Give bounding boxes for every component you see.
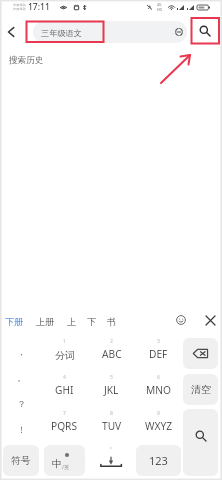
staticText: 2 <box>110 338 113 345</box>
staticText: 7 <box>63 410 66 417</box>
staticText: GHI <box>55 383 74 397</box>
staticText: 5 <box>110 374 113 381</box>
staticText: 中国移动 <box>13 3 26 7</box>
staticText: ， <box>17 346 26 357</box>
button[interactable]: 6 <box>135 374 182 405</box>
staticText: JKL <box>104 383 119 397</box>
staticText: 上 <box>67 316 77 328</box>
button[interactable]: 1 <box>41 338 88 369</box>
staticText: 符号 <box>11 455 31 467</box>
button[interactable]: 7 <box>41 410 88 441</box>
staticText: WXYZ <box>145 419 173 433</box>
button[interactable]: 中 <box>44 445 85 476</box>
button[interactable]: 8 <box>88 410 135 441</box>
button[interactable]: Search <box>183 409 218 476</box>
staticText: 。 <box>17 372 26 383</box>
staticText: ！ <box>17 424 26 435</box>
button[interactable]: 上册 <box>36 316 55 328</box>
button[interactable]: 。 <box>3 364 39 390</box>
staticText: TUV <box>102 419 122 433</box>
button[interactable]: 2 <box>88 338 135 369</box>
staticText: 3 <box>157 338 160 345</box>
staticText: 分词 <box>55 349 75 362</box>
staticText: 1 <box>63 338 66 345</box>
button[interactable]: 三年级语文 <box>33 21 187 43</box>
button[interactable]: Back <box>0 20 22 43</box>
staticText: DEF <box>149 347 168 361</box>
button[interactable]: ？ <box>3 390 39 416</box>
staticText: 中 <box>52 457 62 470</box>
button[interactable]: ！ <box>3 416 39 442</box>
button[interactable]: 下册 <box>5 316 24 328</box>
button[interactable]: 5 <box>88 374 135 405</box>
button[interactable]: 3 <box>135 338 182 369</box>
button[interactable]: Backspace <box>183 338 218 369</box>
staticText: 17:11 <box>28 1 50 13</box>
button[interactable]: 123 <box>136 445 181 476</box>
staticText: 书 <box>107 316 117 328</box>
staticText: 4 <box>63 374 66 381</box>
button[interactable]: Search <box>191 18 219 44</box>
button[interactable]: Emoji <box>172 311 190 329</box>
button[interactable]: 9 <box>135 410 182 441</box>
button[interactable]: Space <box>88 445 134 476</box>
staticText: 上册 <box>36 316 55 328</box>
button[interactable]: 4 <box>41 374 88 405</box>
staticText: PQRS <box>51 419 78 433</box>
button[interactable]: 书 <box>107 316 117 328</box>
staticText: /英 <box>62 463 70 470</box>
staticText: MNO <box>146 383 171 397</box>
button[interactable]: 符号 <box>3 445 39 476</box>
staticText: 清空 <box>191 383 211 396</box>
button[interactable]: Close keyboard <box>201 311 219 329</box>
staticText: 8 <box>110 410 113 417</box>
staticText: 123 <box>149 453 168 468</box>
staticText: ？ <box>17 398 26 409</box>
button[interactable]: 上 <box>67 316 77 328</box>
button[interactable]: 清空 <box>183 374 218 405</box>
button[interactable]: 下 <box>87 316 97 328</box>
button[interactable]: ， <box>3 338 39 364</box>
staticText: 4G <box>157 2 162 7</box>
staticText: 三年级语文 <box>41 28 82 38</box>
staticText: 中国移动 <box>13 7 26 11</box>
staticText: 9 <box>157 410 160 417</box>
staticText: 下册 <box>5 316 24 328</box>
staticText: 6 <box>157 374 160 381</box>
staticText: HD <box>157 7 162 12</box>
staticText: 下 <box>87 316 97 328</box>
staticText: 搜索历史 <box>9 55 44 66</box>
staticText: ABC <box>102 347 122 361</box>
